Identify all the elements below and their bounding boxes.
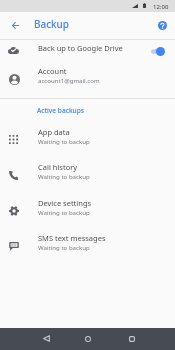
button[interactable]: Recent apps [122,328,142,350]
button[interactable]: App data [0,122,175,158]
staticText: 12:00 [153,3,169,11]
staticText: Device settings [38,198,92,208]
staticText: Back up to Google Drive [38,43,123,53]
button[interactable]: Help [152,15,172,35]
staticText: App data [38,127,70,137]
button[interactable]: Navigate up [4,14,26,36]
staticText: Waiting to backup [38,172,90,180]
staticText: SMS text messages [38,233,106,243]
staticText: Waiting to backup [38,137,90,145]
staticText: Call history [38,162,78,172]
button[interactable]: Back [36,327,56,349]
button[interactable]: Account [0,63,175,98]
button[interactable] [146,40,171,63]
staticText: Account [38,66,67,76]
button[interactable]: Back up to Google Drive [0,40,175,63]
staticText: Active backups [37,106,85,115]
staticText: account1@gmail.com [38,76,100,84]
button[interactable]: SMS text messages [0,228,175,264]
staticText: Waiting to backup [38,243,90,251]
button[interactable]: Device settings [0,193,175,229]
button[interactable]: Call history [0,157,175,193]
button[interactable]: Home [78,328,98,350]
staticText: Waiting to backup [38,208,90,216]
staticText: Backup [34,17,69,30]
